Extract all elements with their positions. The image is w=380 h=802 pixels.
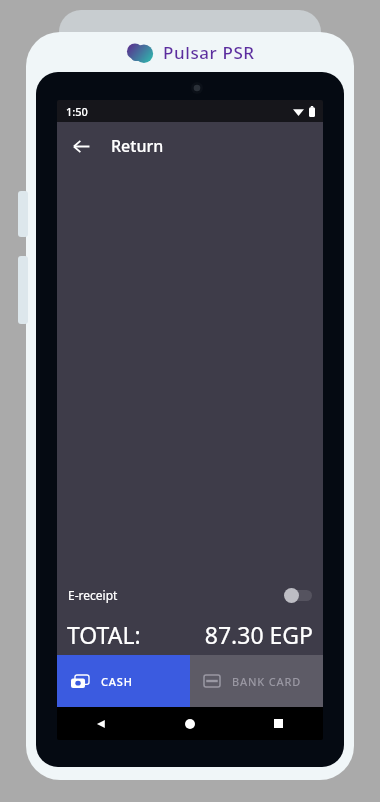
- staticText: 87.30 EGP: [204, 619, 313, 650]
- staticText: E-receipt: [68, 587, 118, 603]
- staticText: 1:50: [66, 104, 88, 119]
- staticText: TOTAL:: [67, 619, 141, 650]
- button[interactable]: Home: [145, 707, 234, 740]
- button[interactable]: BANK CARD: [190, 655, 323, 707]
- staticText: Pulsar PSR: [163, 41, 255, 64]
- button[interactable]: CASH: [57, 655, 190, 707]
- staticText: BANK CARD: [232, 674, 302, 689]
- staticText: Return: [111, 135, 164, 157]
- button[interactable]: E-receipt: [57, 577, 323, 613]
- button[interactable]: Back: [57, 707, 145, 740]
- button[interactable]: Back: [57, 122, 105, 170]
- button[interactable]: Recent apps: [234, 707, 323, 740]
- staticText: CASH: [101, 674, 133, 689]
